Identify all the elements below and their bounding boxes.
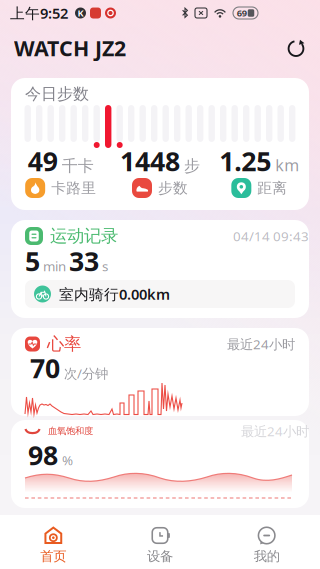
staticText: km — [275, 154, 299, 176]
button[interactable]: 设备 — [107, 515, 213, 569]
staticText: 70 — [30, 350, 60, 386]
staticText: WATCH JZ2 — [14, 34, 126, 62]
staticText: 步数 — [158, 179, 188, 197]
staticText: min — [43, 257, 66, 275]
staticText: 千卡 — [62, 156, 94, 176]
staticText: % — [62, 451, 73, 469]
staticText: 最近24小时 — [241, 422, 309, 440]
staticText: 1.25 — [219, 143, 271, 179]
staticText: K — [77, 7, 83, 19]
button[interactable]: 刷新同步 — [286, 38, 306, 58]
button[interactable]: 我的 — [213, 515, 320, 569]
staticText: 04/14 09:43 — [233, 227, 309, 245]
staticText: 5 — [25, 243, 40, 279]
staticText: 33 — [69, 243, 99, 279]
staticText: 卡路里 — [51, 179, 96, 197]
staticText: 设备 — [147, 548, 173, 564]
staticText: 室内骑行0.00km — [59, 284, 170, 304]
button[interactable]: 血氧饱和度 — [11, 420, 309, 508]
button[interactable]: 心率 — [11, 328, 309, 416]
staticText: 49 — [28, 143, 58, 179]
staticText: 心率 — [47, 333, 81, 355]
button[interactable]: 室内骑行0.00km — [25, 280, 295, 308]
staticText: 上午9:52 — [10, 3, 68, 23]
staticText: 次/分钟 — [64, 364, 108, 382]
button[interactable]: 今日步数 — [11, 78, 309, 210]
staticText: 首页 — [40, 548, 66, 564]
staticText: 步 — [184, 156, 200, 176]
staticText: 血氧饱和度 — [48, 425, 93, 437]
staticText: 今日步数 — [25, 84, 89, 104]
staticText: 1448 — [120, 143, 180, 179]
staticText: 69 — [237, 7, 247, 19]
staticText: 运动记录 — [50, 225, 118, 247]
staticText: 最近24小时 — [227, 335, 295, 353]
staticText: 距离 — [257, 179, 287, 197]
staticText: 我的 — [254, 548, 280, 564]
staticText: s — [102, 257, 108, 275]
button[interactable]: 首页 — [0, 515, 107, 569]
staticText: 98 — [28, 437, 58, 473]
